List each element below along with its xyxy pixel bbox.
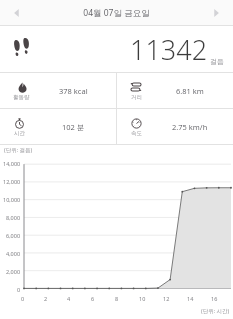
staticText: 2,000 [6, 268, 21, 275]
button[interactable]: Calories [0, 73, 116, 108]
staticText: 2 [44, 295, 48, 302]
staticText: 14,000 [3, 160, 21, 167]
button[interactable]: 11342 [0, 26, 233, 72]
staticText: 시간 [14, 130, 25, 137]
staticText: 4 [67, 295, 71, 302]
staticText: 0 [17, 286, 21, 293]
staticText: (단위: 시간) [201, 307, 230, 315]
staticText: 16 [211, 295, 218, 302]
staticText: 0 [21, 295, 25, 302]
staticText: 11342 [130, 31, 208, 68]
button[interactable]: Speed [117, 109, 233, 144]
staticText: 14 [187, 295, 194, 302]
staticText: 활동량 [13, 94, 30, 101]
staticText: 6 [91, 295, 95, 302]
staticText: 378 kcal [59, 86, 88, 96]
button[interactable]: Next day [207, 4, 225, 22]
staticText: 6,000 [6, 232, 21, 239]
staticText: 10 [139, 295, 146, 302]
button[interactable]: Time [0, 109, 116, 144]
staticText: 12 [163, 295, 170, 302]
staticText: 8,000 [6, 214, 21, 221]
staticText: 04월 07일 금요일 [83, 7, 150, 19]
staticText: 4,000 [6, 250, 21, 257]
staticText: 6.81 km [176, 86, 204, 96]
button[interactable]: Distance [117, 73, 233, 108]
staticText: 거리 [131, 94, 142, 101]
staticText: 걸음 [210, 57, 224, 66]
staticText: 2.75 km/h [172, 122, 208, 132]
staticText: 102 분 [62, 122, 85, 132]
staticText: (단위: 걸음) [4, 146, 33, 154]
staticText: 8 [115, 295, 119, 302]
staticText: 속도 [131, 130, 142, 137]
staticText: 10,000 [3, 196, 21, 203]
button[interactable]: Previous day [8, 4, 26, 22]
staticText: 12,000 [3, 178, 21, 185]
